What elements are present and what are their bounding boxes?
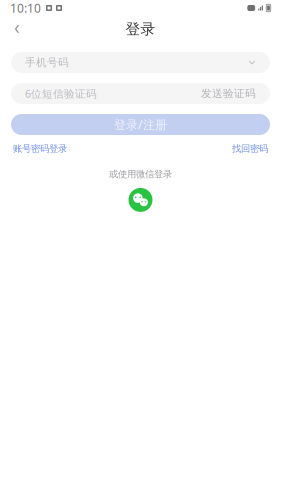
- staticText: 找回密码: [232, 143, 268, 154]
- button[interactable]: 账号密码登录: [13, 143, 67, 154]
- button[interactable]: 找回密码: [232, 143, 268, 154]
- staticText: 账号密码登录: [13, 143, 67, 154]
- staticText: 6位短信验证码: [25, 86, 97, 101]
- staticText: 发送验证码: [201, 87, 256, 100]
- button[interactable]: 发送验证码: [201, 87, 256, 100]
- button[interactable]: 登录/注册: [11, 114, 270, 135]
- staticText: 10:10: [10, 0, 41, 16]
- button[interactable]: Back: [0, 16, 34, 42]
- staticText: 登录: [125, 20, 155, 38]
- staticText: 或使用微信登录: [109, 168, 172, 180]
- staticText: 手机号码: [25, 56, 69, 69]
- button[interactable]: 使用微信登录: [127, 187, 153, 213]
- staticText: 登录/注册: [114, 116, 167, 132]
